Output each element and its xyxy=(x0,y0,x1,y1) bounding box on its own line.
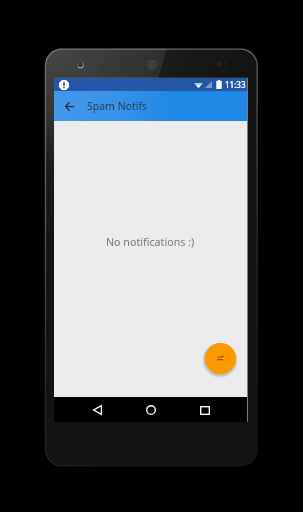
button[interactable]: New note xyxy=(205,343,236,374)
button[interactable]: Back xyxy=(86,399,108,421)
staticText: No notifications :) xyxy=(106,235,195,250)
button[interactable]: Navigate up xyxy=(54,91,84,121)
staticText: 11:33 xyxy=(225,79,246,90)
button[interactable]: Home xyxy=(140,399,162,421)
button[interactable]: Recent apps xyxy=(194,399,216,421)
staticText: Spam Notifs xyxy=(87,99,148,113)
